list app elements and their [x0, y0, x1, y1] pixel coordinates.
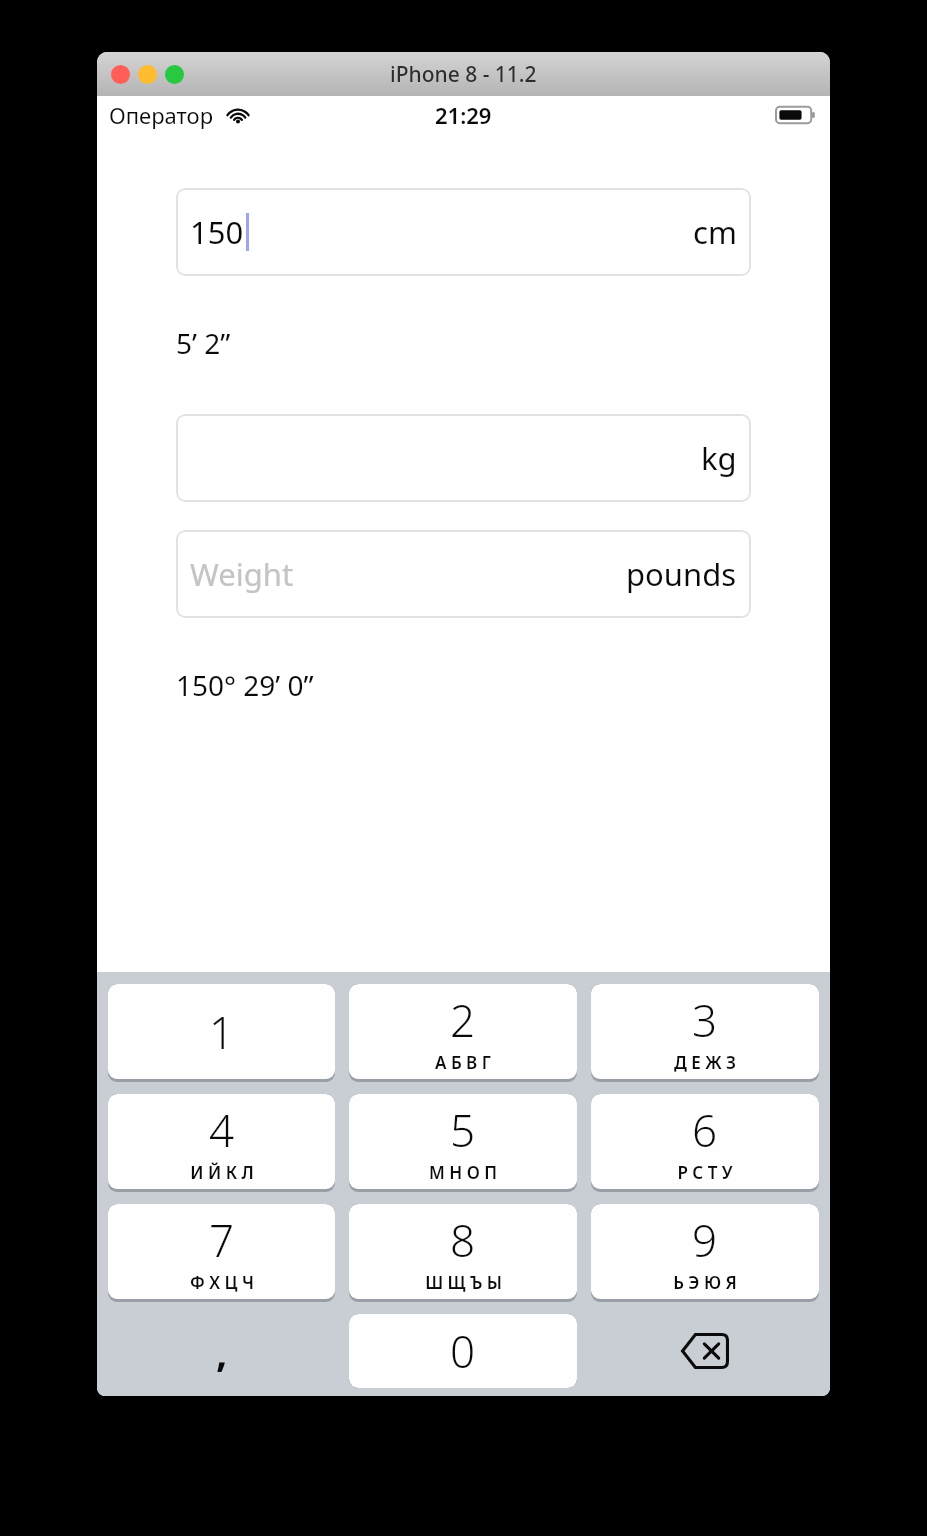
staticText: 5’ 2” [176, 324, 231, 362]
button[interactable]: 4 [108, 1094, 335, 1192]
button[interactable]: 7 [108, 1204, 335, 1302]
staticText: 4 [209, 1100, 235, 1160]
staticText: Р С Т У [677, 1161, 733, 1184]
staticText: 0 [450, 1321, 476, 1381]
staticText: Ф Х Ц Ч [190, 1271, 254, 1294]
staticText: cm [693, 211, 737, 253]
staticText: А Б В Г [435, 1051, 491, 1074]
button[interactable]: 150 [176, 188, 751, 276]
staticText: 150 [190, 211, 244, 253]
button[interactable]: 8 [349, 1204, 577, 1302]
staticText: , [216, 1324, 228, 1378]
staticText: И Й К Л [190, 1161, 254, 1184]
staticText: 2 [450, 990, 476, 1050]
staticText: 6 [692, 1100, 718, 1160]
button[interactable]: 6 [591, 1094, 819, 1192]
staticText: 8 [450, 1210, 476, 1270]
button[interactable]: Comma [108, 1314, 335, 1388]
staticText: kg [701, 437, 737, 479]
staticText: 9 [692, 1210, 718, 1270]
staticText: 7 [209, 1210, 235, 1270]
staticText: Ш Щ Ъ Ы [425, 1271, 502, 1294]
button[interactable]: 1 [108, 984, 335, 1082]
staticText: iPhone 8 - 11.2 [390, 60, 537, 89]
staticText: Ь Э Ю Я [673, 1271, 737, 1294]
button[interactable]: 5 [349, 1094, 577, 1192]
staticText: 1 [209, 1002, 235, 1062]
button[interactable]: 0 [349, 1314, 577, 1388]
staticText: Оператор [109, 100, 214, 130]
button[interactable] [138, 65, 157, 84]
button[interactable]: kg [176, 414, 751, 502]
staticText: 5 [450, 1100, 476, 1160]
staticText: pounds [626, 553, 737, 595]
button[interactable] [111, 65, 130, 84]
button[interactable]: 2 [349, 984, 577, 1082]
staticText: Д Е Ж З [674, 1051, 736, 1074]
button[interactable]: 9 [591, 1204, 819, 1302]
staticText: Weight [190, 553, 294, 595]
staticText: М Н О П [429, 1161, 497, 1184]
staticText: 21:29 [435, 100, 492, 130]
button[interactable]: 3 [591, 984, 819, 1082]
staticText: 150° 29’ 0” [176, 666, 314, 704]
button[interactable]: Backspace [591, 1314, 819, 1388]
button[interactable] [165, 65, 184, 84]
button[interactable]: Weight [176, 530, 751, 618]
staticText: 3 [692, 990, 718, 1050]
